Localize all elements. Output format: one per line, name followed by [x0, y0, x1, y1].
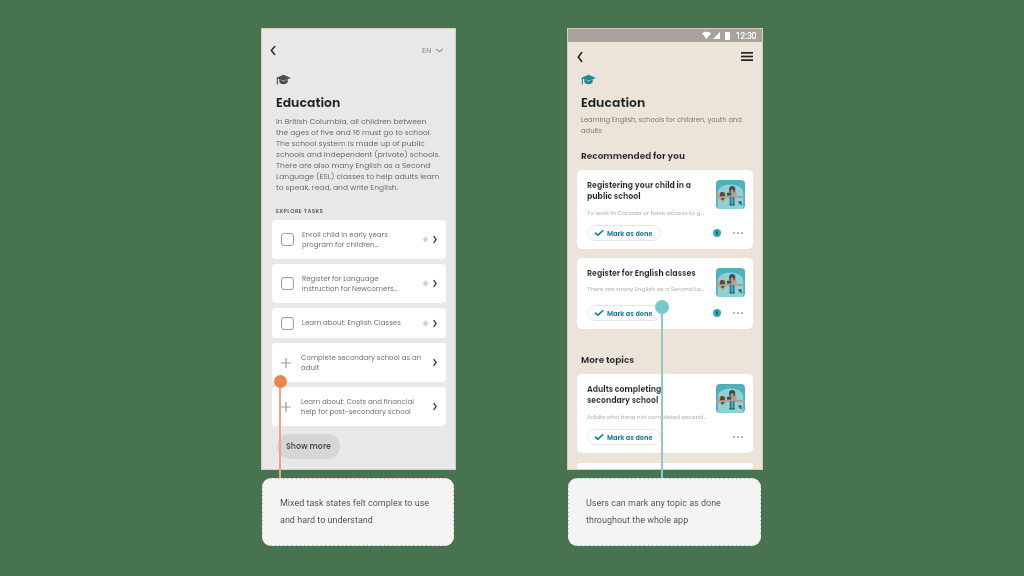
staticText: throughout the whole app: [586, 515, 689, 526]
button[interactable]: Mark as done: [587, 225, 661, 241]
button[interactable]: More options: [731, 310, 745, 316]
button[interactable]: Learn about: Costs and financial: [272, 387, 446, 426]
staticText: secondary school: [587, 395, 659, 406]
button[interactable]: Enroll child in early years: [272, 220, 446, 259]
button[interactable]: EN: [419, 42, 446, 58]
staticText: Mark as done: [607, 309, 653, 318]
staticText: More topics: [581, 354, 635, 366]
staticText: EN: [422, 45, 432, 55]
button[interactable]: Register for Language: [272, 264, 446, 303]
staticText: Register for Language: [302, 274, 379, 284]
staticText: Adults completing: [587, 384, 662, 395]
button[interactable]: Users can mark any topic as done: [568, 478, 761, 546]
button[interactable]: Register for English classes: [577, 258, 753, 329]
button[interactable]: Back: [571, 48, 588, 65]
staticText: Registering your child in a: [587, 180, 692, 191]
button[interactable]: Back: [264, 42, 281, 59]
button[interactable]: Mixed task states felt complex to use: [262, 478, 454, 546]
staticText: Enroll child in early years: [302, 230, 388, 240]
button[interactable]: Getting your education from: [577, 463, 753, 469]
button[interactable]: More options: [731, 230, 745, 236]
button[interactable]: Mark as done: [587, 305, 661, 321]
staticText: Register for English classes: [587, 268, 696, 279]
button[interactable]: Save: [713, 309, 721, 317]
staticText: Recommended for you: [581, 150, 685, 162]
staticText: adult: [301, 363, 320, 373]
staticText: Adults who have not completed second…: [587, 413, 707, 421]
button[interactable]: Show more: [277, 434, 340, 459]
staticText: Mixed task states felt complex to use: [280, 498, 430, 509]
staticText: and hard to understand: [280, 515, 373, 526]
staticText: Education: [276, 94, 341, 111]
staticText: Learning English, schools for children, …: [581, 115, 742, 135]
staticText: 12:30: [736, 31, 757, 41]
button[interactable]: Menu: [738, 48, 755, 65]
staticText: In British Columbia, all children betwee…: [276, 116, 441, 193]
staticText: public school: [587, 191, 641, 202]
button[interactable]: Mark as done: [587, 429, 661, 445]
button[interactable]: Complete secondary school as an: [272, 343, 446, 382]
staticText: Learn about: English Classes: [302, 318, 401, 328]
staticText: Show more: [286, 441, 331, 452]
staticText: EXPLORE TASKS: [276, 207, 324, 215]
staticText: There are many English as a Second La…: [587, 285, 705, 293]
staticText: Instruction for Newcomers…: [302, 284, 398, 294]
button[interactable]: Adults completing: [577, 374, 753, 453]
staticText: program for children…: [302, 240, 379, 250]
button[interactable]: More options: [731, 434, 745, 440]
staticText: Education: [581, 94, 646, 111]
button[interactable]: Save: [713, 229, 721, 237]
staticText: To work in Canada or have access to g…: [587, 209, 704, 217]
staticText: help for post-secondary school: [301, 407, 411, 417]
staticText: Mark as done: [607, 433, 653, 442]
staticText: Learn about: Costs and financial: [301, 397, 414, 407]
button[interactable]: Registering your child in a: [577, 170, 753, 249]
staticText: Complete secondary school as an: [301, 353, 422, 363]
staticText: Mark as done: [607, 229, 653, 238]
button[interactable]: Learn about: English Classes: [272, 308, 446, 338]
staticText: Users can mark any topic as done: [586, 498, 721, 509]
